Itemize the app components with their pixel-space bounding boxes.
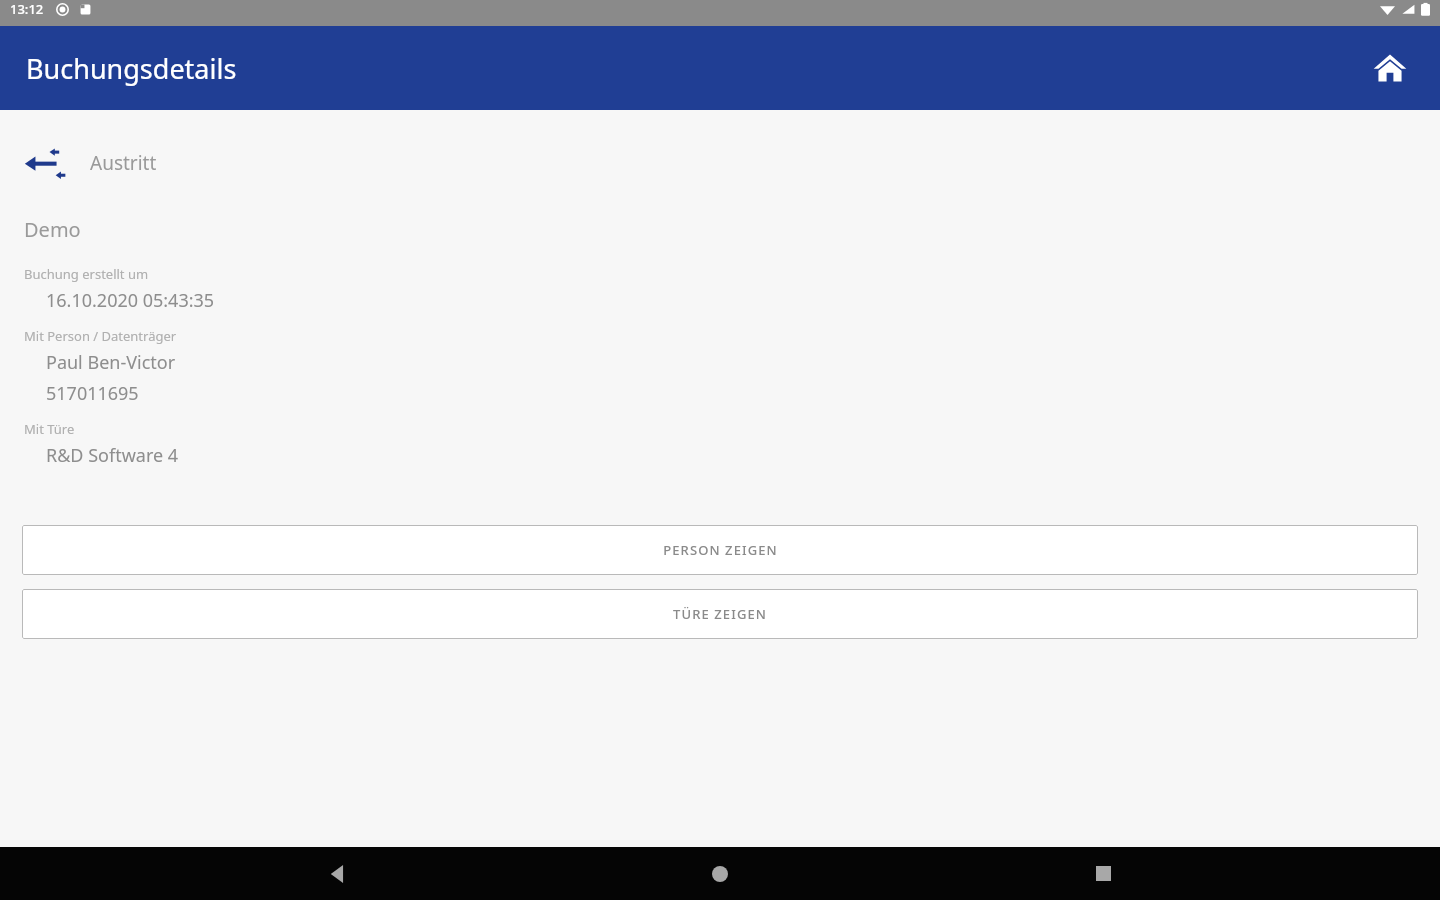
staticText: 517011695 bbox=[46, 381, 139, 406]
staticText: Buchungsdetails bbox=[26, 50, 237, 87]
button[interactable]: Home bbox=[675, 847, 765, 900]
button[interactable]: Austritt bbox=[0, 140, 1440, 186]
staticText: Buchung erstellt um bbox=[24, 265, 149, 283]
staticText: 13:12 bbox=[10, 0, 44, 18]
button[interactable]: Home bbox=[1366, 44, 1414, 92]
staticText: R&D Software 4 bbox=[46, 443, 179, 468]
button[interactable]: PERSON ZEIGEN bbox=[22, 525, 1418, 575]
staticText: Paul Ben-Victor bbox=[46, 350, 176, 375]
staticText: Demo bbox=[24, 216, 81, 243]
staticText: TÜRE ZEIGEN bbox=[673, 605, 767, 623]
button[interactable]: Recent apps bbox=[1058, 847, 1148, 900]
button[interactable]: TÜRE ZEIGEN bbox=[22, 589, 1418, 639]
staticText: 16.10.2020 05:43:35 bbox=[46, 288, 215, 313]
staticText: Mit Türe bbox=[24, 420, 75, 438]
button[interactable]: Back bbox=[293, 847, 383, 900]
staticText: Austritt bbox=[90, 150, 157, 176]
staticText: Mit Person / Datenträger bbox=[24, 327, 177, 345]
staticText: PERSON ZEIGEN bbox=[663, 541, 778, 559]
